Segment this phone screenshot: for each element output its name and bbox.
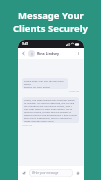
button[interactable]: Back <box>20 50 27 57</box>
staticText: 10:34 AM <box>22 124 33 127</box>
staticText: Clients Securely <box>13 22 88 35</box>
staticText: distract myself, it feels like the anxie… <box>24 110 71 113</box>
staticText: Write your message <box>32 171 59 175</box>
button[interactable]: Contact avatar <box>28 50 35 57</box>
button[interactable]: Rina Lindsey <box>37 51 75 56</box>
button[interactable]: Thank okay. Can you tell me more about <box>22 78 68 89</box>
staticText: why this is happening, but it's starting… <box>24 116 72 119</box>
staticText: Rina Lindsey <box>37 51 59 56</box>
staticText: Thank okay. Can you tell me more about <box>24 79 66 85</box>
staticText: my thoughts are running in circles, and … <box>24 104 72 107</box>
staticText: Lately, I've been feeling this constant … <box>24 98 75 101</box>
staticText: make me feel really stuck. <box>24 119 55 122</box>
staticText: 10:32 AM <box>69 90 80 93</box>
button[interactable]: Lately, I've been feeling this constant … <box>22 97 79 123</box>
staticText: of unease. It's hard to describe, but it… <box>24 101 75 104</box>
button[interactable]: Attach file <box>20 169 28 177</box>
staticText: what is on your mind? <box>24 85 50 88</box>
button[interactable]: Voice message <box>74 169 82 177</box>
button[interactable]: Write your message <box>29 169 73 177</box>
staticText: can't get them to stop. Even when I try … <box>24 107 73 110</box>
staticText: always there in the background. I don't … <box>24 113 77 116</box>
staticText: Message Your <box>18 9 84 22</box>
button[interactable]: More options <box>75 50 82 57</box>
staticText: 9:41 <box>22 42 29 46</box>
